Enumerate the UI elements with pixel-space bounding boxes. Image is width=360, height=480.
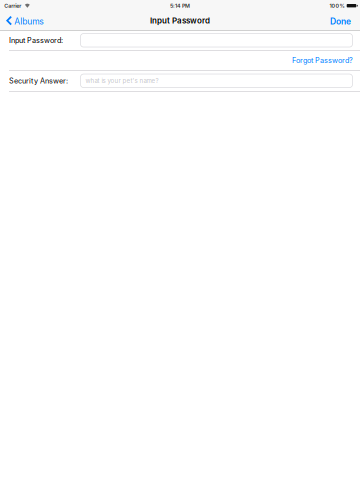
button[interactable]: Done bbox=[323, 13, 360, 30]
button[interactable]: Forgot Password? bbox=[0, 51, 360, 70]
staticText: Carrier bbox=[4, 2, 21, 9]
staticText: Albums bbox=[14, 16, 44, 27]
staticText: 5:14 PM bbox=[170, 2, 190, 9]
staticText: what is your pet's name? bbox=[85, 77, 158, 84]
button[interactable]: Input Password bbox=[80, 33, 352, 47]
button[interactable]: Albums bbox=[0, 13, 49, 30]
staticText: Done bbox=[330, 16, 351, 27]
button[interactable]: Security Answer bbox=[80, 74, 352, 87]
staticText: Input Password: bbox=[9, 36, 63, 45]
staticText: Forgot Password? bbox=[292, 56, 353, 65]
staticText: Security Answer: bbox=[9, 76, 68, 85]
staticText: 100% bbox=[329, 2, 344, 9]
staticText: Input Password bbox=[150, 16, 210, 26]
